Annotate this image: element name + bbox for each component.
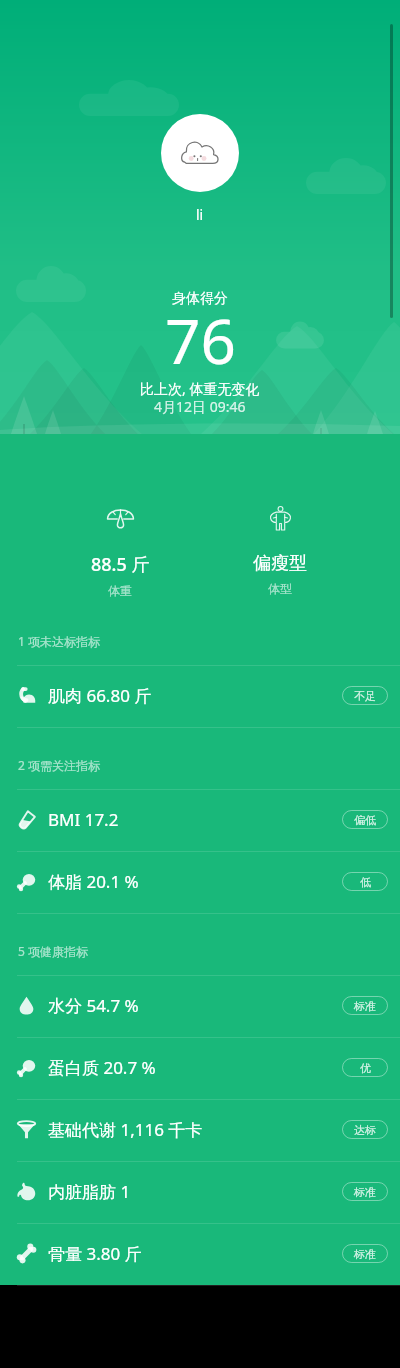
staticText: 2 项需关注指标 — [18, 757, 100, 773]
staticText: 体型 — [268, 581, 292, 596]
staticText: 比上次, 体重无变化 — [140, 379, 260, 398]
button[interactable]: 偏瘦型 — [220, 506, 340, 596]
staticText: 5 项健康指标 — [18, 943, 88, 959]
button[interactable]: BMI 17.2 — [0, 790, 400, 852]
button[interactable]: 水分 54.7 % — [0, 976, 400, 1038]
staticText: 1 项未达标指标 — [18, 633, 100, 649]
button[interactable]: 内脏脂肪 1 — [0, 1162, 400, 1224]
staticText: 88.5 斤 — [91, 552, 150, 577]
button[interactable]: 骨量 3.80 斤 — [0, 1224, 400, 1286]
staticText: 基础代谢 1,116 千卡 — [48, 1118, 203, 1141]
staticText: 不足 — [354, 689, 376, 703]
button[interactable]: 蛋白质 20.7 % — [0, 1038, 400, 1100]
staticText: 骨量 3.80 斤 — [48, 1242, 142, 1265]
staticText: 标准 — [354, 1185, 376, 1199]
staticText: 标准 — [354, 999, 376, 1013]
staticText: 4月12日 09:46 — [154, 397, 246, 416]
staticText: 身体得分 — [172, 290, 228, 308]
button[interactable]: 体脂 20.1 % — [0, 852, 400, 914]
staticText: li — [196, 205, 204, 224]
staticText: 偏瘦型 — [253, 552, 307, 575]
staticText: BMI 17.2 — [48, 808, 119, 831]
staticText: 标准 — [354, 1247, 376, 1261]
staticText: 达标 — [354, 1123, 376, 1137]
staticText: 低 — [360, 875, 371, 889]
button[interactable]: 肌肉 66.80 斤 — [0, 666, 400, 728]
staticText: 肌肉 66.80 斤 — [48, 684, 152, 707]
staticText: 水分 54.7 % — [48, 994, 139, 1017]
staticText: 体重 — [108, 583, 132, 598]
staticText: 76 — [165, 298, 236, 382]
button[interactable]: Profile avatar — [161, 114, 239, 192]
staticText: 优 — [360, 1061, 371, 1075]
staticText: 内脏脂肪 1 — [48, 1180, 131, 1203]
staticText: 偏低 — [354, 813, 376, 827]
staticText: 蛋白质 20.7 % — [48, 1056, 156, 1079]
staticText: 体脂 20.1 % — [48, 870, 139, 893]
button[interactable]: 基础代谢 1,116 千卡 — [0, 1100, 400, 1162]
button[interactable]: 88.5 斤 — [60, 506, 180, 598]
